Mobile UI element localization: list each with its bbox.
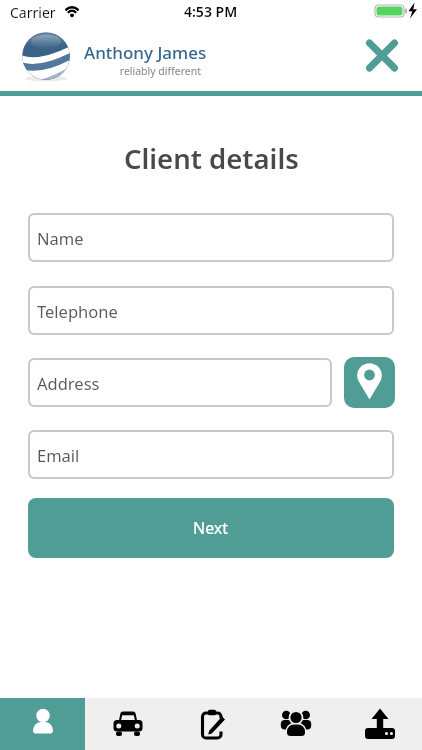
button[interactable]: Next [28, 498, 394, 558]
staticText: reliably different [84, 64, 201, 78]
button[interactable] [358, 32, 406, 80]
button[interactable]: Address [28, 358, 332, 407]
button[interactable] [0, 698, 85, 750]
staticText: Address [37, 372, 100, 394]
staticText: Client details [124, 140, 299, 177]
button[interactable] [170, 698, 254, 750]
button[interactable]: Name [28, 213, 394, 262]
staticText: Next [193, 517, 229, 539]
staticText: Telephone [37, 300, 118, 322]
staticText: 4:53 PM [184, 2, 238, 21]
button[interactable] [344, 357, 395, 408]
button[interactable] [85, 698, 170, 750]
staticText: Anthony James [84, 41, 207, 64]
staticText: Carrier [10, 3, 56, 22]
button[interactable]: Telephone [28, 286, 394, 335]
staticText: Email [37, 444, 80, 466]
button[interactable] [254, 698, 338, 750]
button[interactable]: Email [28, 430, 394, 479]
staticText: Name [37, 227, 84, 249]
button[interactable] [338, 698, 422, 750]
